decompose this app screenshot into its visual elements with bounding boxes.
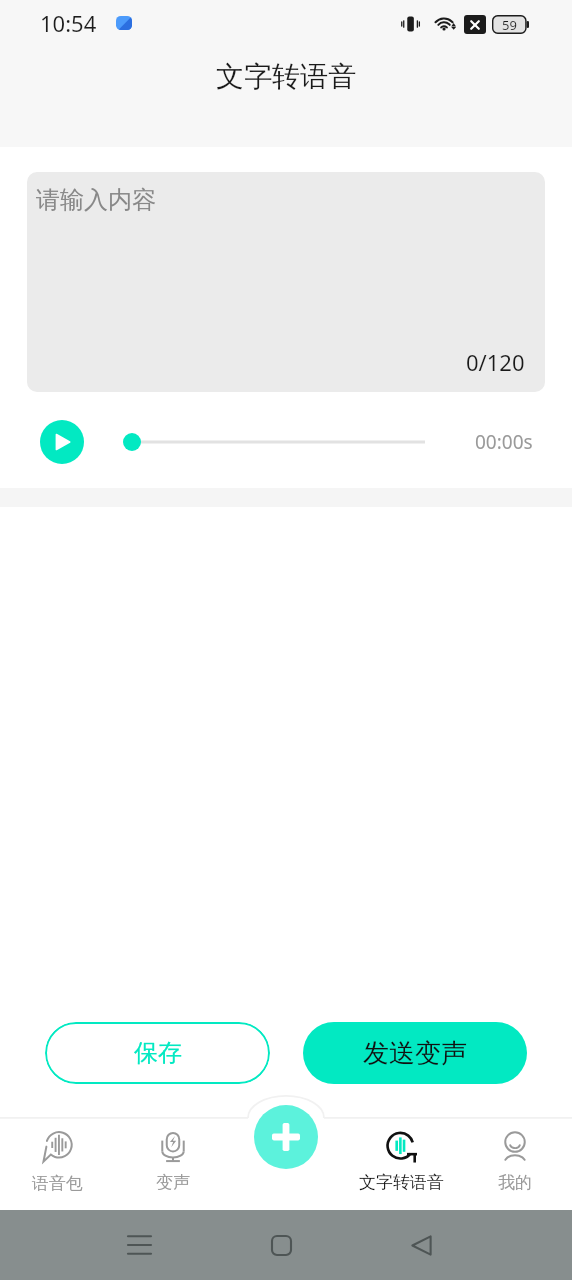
button[interactable]: 发送变声 — [303, 1022, 527, 1084]
staticText: 语音包 — [32, 1173, 83, 1194]
button[interactable]: 保存 — [45, 1022, 270, 1084]
button[interactable]: Home — [254, 1218, 308, 1272]
staticText: 我的 — [498, 1172, 532, 1193]
staticText: 0/120 — [466, 347, 525, 377]
button[interactable]: 我的 — [458, 1117, 572, 1193]
button[interactable]: Add — [254, 1105, 318, 1169]
staticText: 文字转语音 — [359, 1172, 444, 1193]
staticText: 变声 — [156, 1172, 190, 1193]
staticText: 保存 — [134, 1038, 182, 1068]
staticText: 文字转语音 — [216, 59, 356, 94]
button[interactable]: 文字转语音 — [344, 1117, 458, 1193]
button[interactable]: 请输入内容 — [27, 172, 545, 392]
button[interactable]: 语音包 — [0, 1117, 115, 1194]
button[interactable]: Seek — [84, 432, 425, 452]
staticText: 00:00s — [475, 429, 533, 455]
button[interactable]: Back — [394, 1218, 448, 1272]
staticText: 10:54 — [40, 8, 97, 38]
staticText: 请输入内容 — [36, 185, 156, 215]
button[interactable]: Play — [40, 420, 84, 464]
button[interactable]: Recents — [112, 1218, 166, 1272]
staticText: 发送变声 — [363, 1037, 467, 1070]
staticText: 59 — [502, 16, 517, 34]
button[interactable]: 变声 — [115, 1117, 230, 1193]
